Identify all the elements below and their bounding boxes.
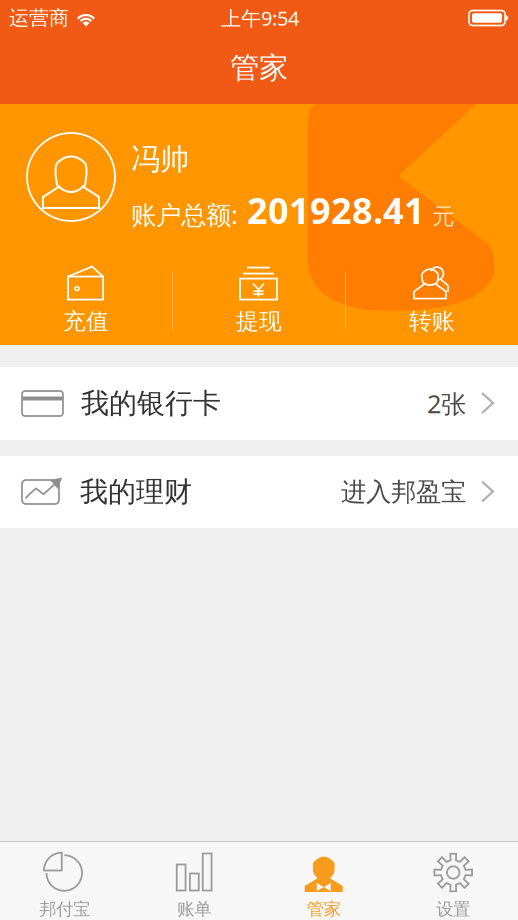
staticText: 设置 — [436, 898, 470, 920]
staticText: 上午9:54 — [221, 5, 299, 31]
button[interactable]: 转账 — [346, 256, 518, 345]
staticText: 2张 — [427, 387, 466, 420]
button[interactable]: 管家 — [259, 841, 388, 920]
staticText: 提现 — [236, 308, 282, 335]
button[interactable]: 充值 — [0, 256, 172, 345]
staticText: 账单 — [177, 898, 211, 920]
staticText: 邦付宝 — [39, 898, 90, 920]
staticText: 账户总额: — [131, 198, 238, 231]
staticText: 我的银行卡 — [81, 386, 221, 421]
staticText: 管家 — [307, 898, 341, 920]
staticText: 元 — [425, 202, 455, 230]
button[interactable]: 邦付宝 — [0, 841, 129, 920]
button[interactable]: 账单 — [129, 841, 259, 920]
button[interactable]: 我的银行卡 — [0, 367, 518, 440]
button[interactable]: 我的理财 — [0, 456, 518, 528]
button[interactable]: 提现 — [173, 256, 345, 345]
staticText: 我的理财 — [80, 475, 192, 509]
staticText: 充值 — [63, 308, 109, 335]
staticText: 201928.41 — [238, 185, 425, 234]
staticText: 转账 — [409, 308, 455, 335]
staticText: 管家 — [230, 50, 288, 86]
staticText: 进入邦盈宝 — [341, 476, 466, 507]
staticText: 冯帅 — [131, 141, 189, 177]
staticText: 运营商 — [9, 6, 69, 30]
button[interactable]: 设置 — [388, 841, 518, 920]
